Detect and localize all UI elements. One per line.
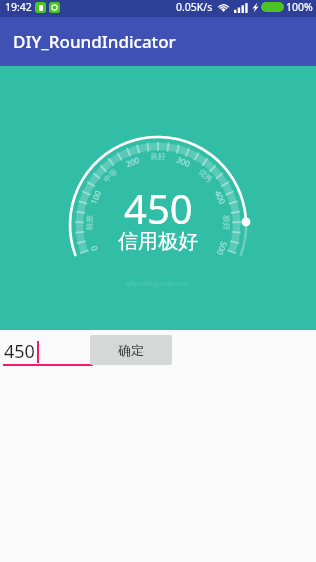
- staticText: http://blog.csdn.net/: [126, 279, 190, 288]
- staticText: DIY_RoundIndicator: [13, 30, 176, 53]
- staticText: 19:42: [5, 0, 32, 14]
- staticText: 450: [124, 181, 193, 235]
- button[interactable]: 450: [0, 334, 94, 366]
- button[interactable]: DIY_RoundIndicator: [0, 17, 316, 66]
- staticText: 确定: [118, 342, 144, 358]
- staticText: 100%: [286, 0, 313, 14]
- staticText: 450: [4, 339, 35, 364]
- staticText: 0.05K/s: [176, 0, 213, 14]
- staticText: 信用极好: [118, 229, 198, 254]
- button[interactable]: 确定: [90, 335, 172, 365]
